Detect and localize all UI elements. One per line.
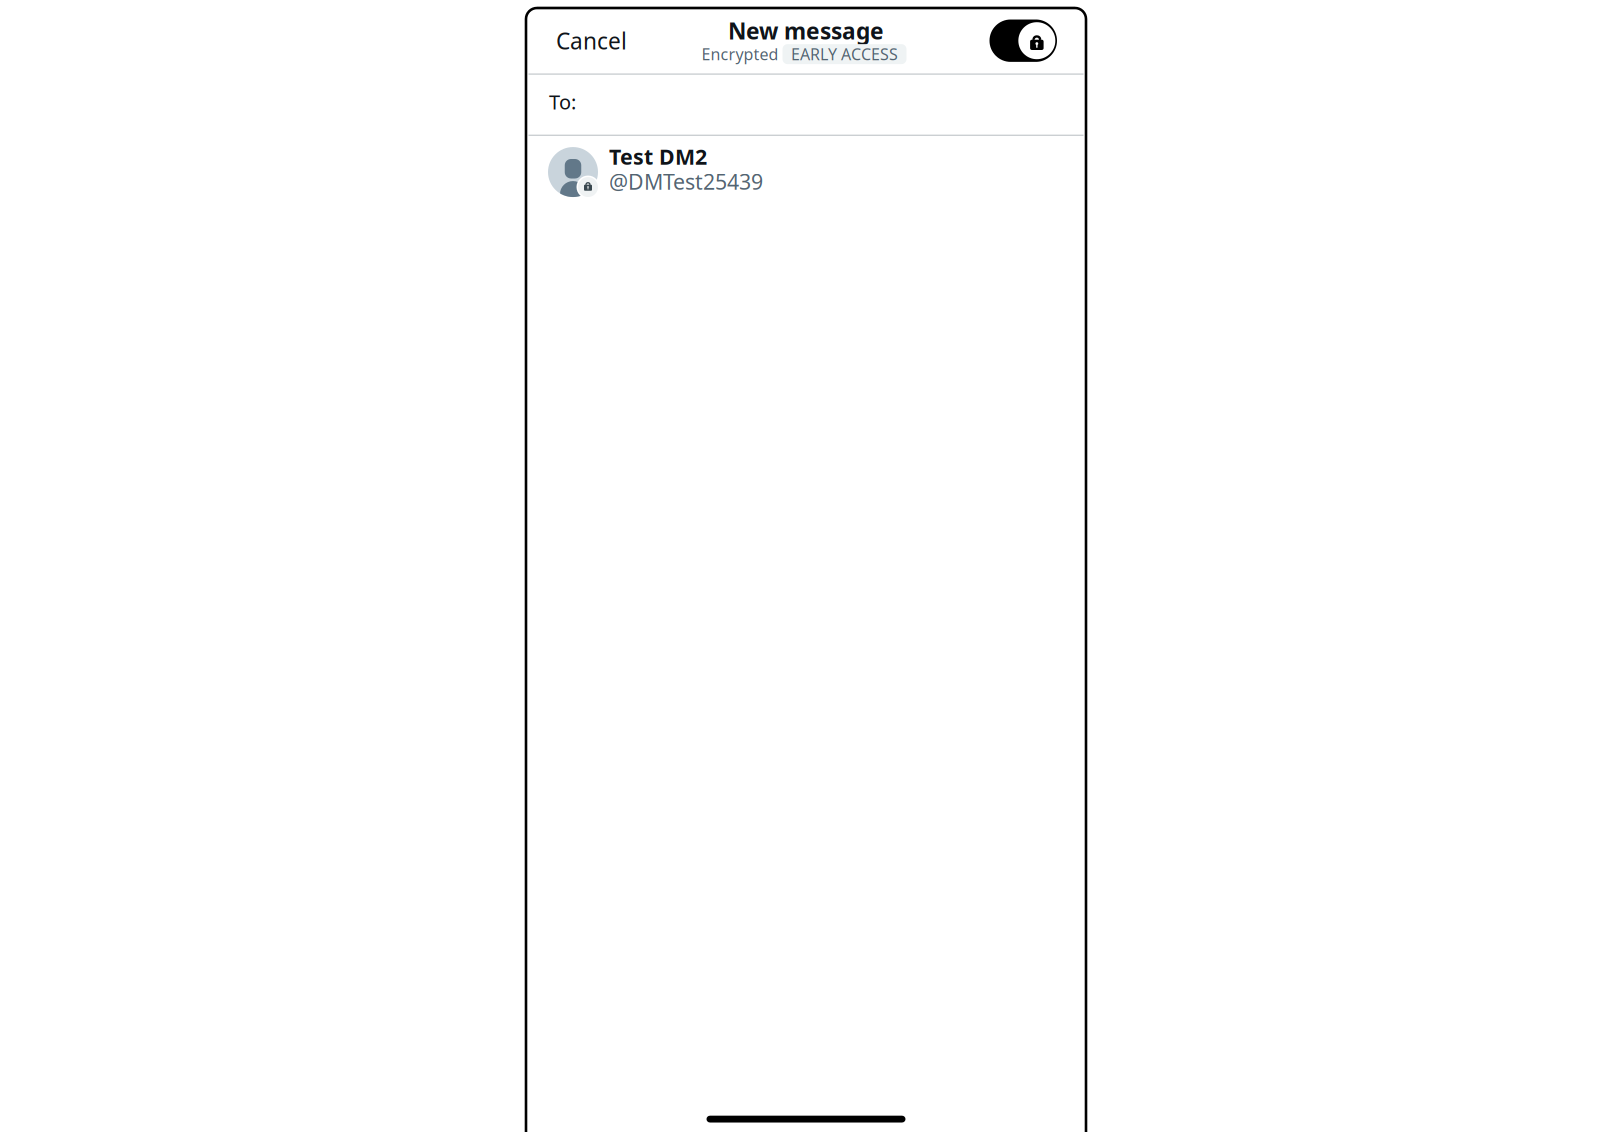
staticText: @DMTest25439	[609, 167, 763, 196]
staticText: To:	[549, 88, 576, 115]
staticText: Cancel	[556, 25, 627, 56]
button[interactable]: Encrypted conversation toggle	[973, 8, 1086, 73]
staticText: EARLY ACCESS	[791, 43, 898, 65]
staticText: Encrypted	[701, 43, 778, 65]
button[interactable]: Cancel	[526, 12, 643, 69]
button[interactable]: Test DM2	[526, 136, 1086, 212]
staticText: Test DM2	[609, 142, 707, 171]
staticText: New message	[728, 15, 884, 46]
